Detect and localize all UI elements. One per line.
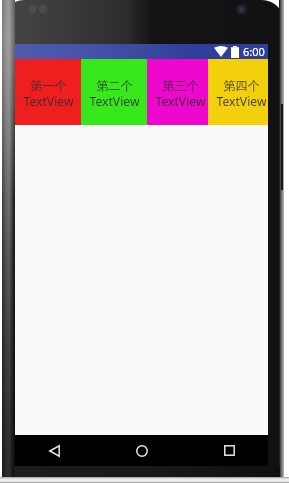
staticText: 第二个 TextView (89, 78, 140, 109)
button[interactable]: 第四个 TextView (208, 59, 268, 125)
button[interactable]: Recent apps (209, 435, 249, 466)
staticText: 第一个 TextView (23, 78, 74, 109)
button[interactable]: Home (122, 435, 162, 466)
staticText: 6:00 (243, 44, 265, 59)
button[interactable]: Back (34, 435, 74, 466)
button[interactable]: 第一个 TextView (15, 59, 81, 125)
staticText: 第四个 TextView (216, 78, 267, 109)
staticText: 第三个 TextView (155, 78, 206, 109)
button[interactable]: 第三个 TextView (147, 59, 213, 125)
button[interactable]: 第二个 TextView (81, 59, 147, 125)
